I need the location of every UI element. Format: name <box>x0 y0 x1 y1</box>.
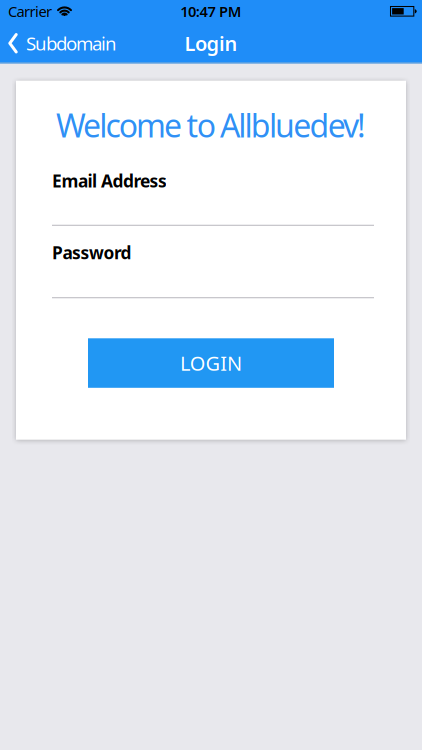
button[interactable]: Subdomain <box>0 31 117 56</box>
staticText: 10:47 PM <box>180 2 242 21</box>
staticText: Email Address <box>52 169 167 192</box>
staticText: Carrier <box>8 2 52 21</box>
button[interactable]: LOGIN <box>88 338 334 388</box>
button[interactable]: Email Address field <box>16 189 406 226</box>
staticText: Login <box>184 30 237 57</box>
staticText: Welcome to Allbluedev! <box>56 104 366 146</box>
button[interactable]: Password field <box>16 261 406 298</box>
staticText: Subdomain <box>26 31 117 56</box>
staticText: Password <box>52 241 131 264</box>
staticText: LOGIN <box>180 350 242 376</box>
